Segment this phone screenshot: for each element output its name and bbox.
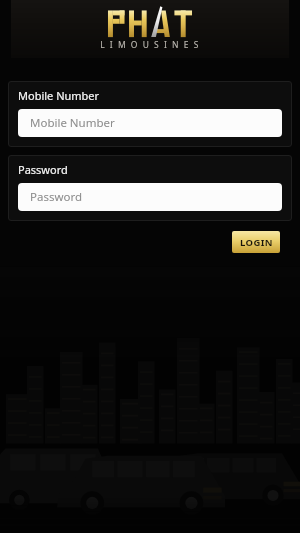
other: PHAT Limousines logo (11, 0, 289, 58)
staticText: LOGIN (240, 236, 273, 249)
staticText: L I M O U S I N E S (11, 39, 289, 51)
staticText: Password (18, 162, 68, 177)
button[interactable]: Password (18, 183, 282, 211)
button[interactable]: Mobile Number (18, 109, 282, 137)
button[interactable]: LOGIN (232, 231, 280, 253)
staticText: Password (30, 189, 83, 205)
staticText: Mobile Number (30, 115, 115, 131)
staticText: Mobile Number (18, 88, 100, 103)
